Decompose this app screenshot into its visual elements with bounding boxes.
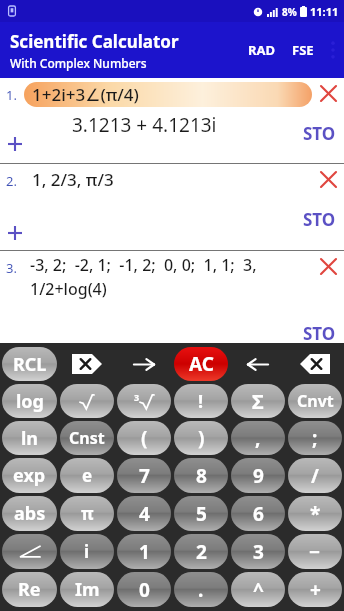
button[interactable]: 7	[117, 458, 171, 493]
button[interactable]: Σ	[231, 384, 285, 418]
staticText: 1.	[6, 86, 17, 104]
staticText: Re	[18, 577, 41, 602]
button[interactable]: e	[60, 458, 114, 493]
button[interactable]: Square root	[60, 384, 114, 418]
button[interactable]: Delete row	[314, 252, 342, 280]
button[interactable]: Cnst	[60, 421, 114, 455]
staticText: -3, 2; -2, 1; -1, 2; 0, 0; 1, 1; 3,	[30, 254, 257, 276]
button[interactable]: Im	[60, 572, 114, 607]
staticText: 0	[139, 577, 150, 603]
staticText: Scientific Calculator	[10, 30, 179, 53]
button[interactable]: 6	[231, 496, 285, 531]
staticText: ln	[21, 426, 39, 451]
staticText: STO	[303, 208, 336, 231]
button[interactable]: log	[2, 384, 57, 418]
button[interactable]: Move left	[231, 347, 285, 381]
button[interactable]: FSE	[284, 31, 322, 69]
staticText: Σ	[252, 388, 264, 415]
staticText: )	[198, 425, 205, 451]
button[interactable]: 3	[231, 534, 285, 569]
button[interactable]: −	[288, 534, 342, 569]
button[interactable]: 1	[117, 534, 171, 569]
staticText: π	[81, 502, 94, 525]
staticText: 1, 2/3, π/3	[32, 168, 114, 191]
button[interactable]: Delete right	[288, 347, 342, 381]
staticText: 3	[134, 391, 140, 403]
button[interactable]: Delete row	[314, 165, 342, 193]
button[interactable]: 1, 2/3, π/3	[24, 167, 312, 192]
staticText: 3.1213 + 4.1213i	[72, 112, 217, 138]
button[interactable]: 0	[117, 572, 171, 607]
button[interactable]: ^	[231, 572, 285, 607]
button[interactable]: ln	[2, 421, 57, 455]
button[interactable]: Cnvt	[288, 384, 342, 418]
button[interactable]: ,	[231, 421, 285, 455]
staticText: 3	[253, 539, 264, 565]
button[interactable]: /	[288, 458, 342, 493]
button[interactable]: -3, 2; -2, 1; -1, 2; 0, 0; 1, 1; 3,	[30, 254, 310, 300]
button[interactable]: exp	[2, 458, 57, 493]
button[interactable]: 4	[117, 496, 171, 531]
button[interactable]: Delete row	[314, 79, 342, 107]
staticText: 8	[196, 463, 207, 489]
staticText: abs	[14, 501, 46, 526]
staticText: 1+2i+3∠(π/4)	[32, 83, 139, 106]
staticText: Cnvt	[297, 390, 334, 412]
staticText: 6	[253, 501, 264, 527]
staticText: .	[198, 577, 204, 603]
button[interactable]: 5	[174, 496, 228, 531]
staticText: +	[310, 577, 321, 603]
button[interactable]: STO	[297, 206, 342, 233]
staticText: STO	[303, 122, 336, 145]
staticText: Im	[75, 577, 100, 602]
button[interactable]: RAD	[240, 31, 284, 69]
button[interactable]: RCL	[2, 347, 57, 381]
button[interactable]: 9	[231, 458, 285, 493]
button[interactable]: )	[174, 421, 228, 455]
button[interactable]: 8	[174, 458, 228, 493]
button[interactable]: Re	[2, 572, 57, 607]
button[interactable]: STO	[297, 120, 342, 147]
button[interactable]: .	[174, 572, 228, 607]
button[interactable]: 2	[174, 534, 228, 569]
button[interactable]: Angle	[2, 534, 57, 569]
staticText: ^	[253, 577, 264, 603]
staticText: With Complex Numbers	[10, 55, 147, 71]
staticText: log	[16, 389, 44, 414]
staticText: AC	[189, 351, 214, 377]
button[interactable]: π	[60, 496, 114, 531]
staticText: 5	[196, 501, 207, 527]
staticText: 11:11	[310, 4, 339, 19]
button[interactable]: Cube root	[117, 384, 171, 418]
button[interactable]: !	[174, 384, 228, 418]
staticText: (	[141, 425, 148, 451]
button[interactable]: abs	[2, 496, 57, 531]
staticText: −	[309, 539, 321, 565]
button[interactable]: Delete left	[60, 347, 114, 381]
staticText: e	[82, 464, 93, 487]
staticText: 1/2+log(4)	[30, 278, 107, 300]
button[interactable]: *	[288, 496, 342, 531]
button[interactable]: 1+2i+3∠(π/4)	[24, 82, 312, 107]
staticText: 9	[253, 463, 264, 489]
staticText: 1	[139, 539, 150, 565]
staticText: exp	[13, 463, 46, 488]
button[interactable]: (	[117, 421, 171, 455]
button[interactable]: ;	[288, 421, 342, 455]
button[interactable]: Add row	[2, 131, 28, 157]
staticText: RCL	[13, 352, 47, 377]
staticText: Cnst	[69, 427, 105, 449]
staticText: /	[311, 463, 319, 489]
button[interactable]: STO	[297, 320, 342, 347]
button[interactable]: Move right	[117, 347, 171, 381]
staticText: ,	[255, 425, 261, 451]
staticText: !	[198, 389, 204, 414]
button[interactable]: +	[288, 572, 342, 607]
staticText: 8%	[282, 5, 297, 19]
button[interactable]: i	[60, 534, 114, 569]
staticText: RAD	[248, 41, 276, 59]
staticText: FSE	[292, 41, 314, 59]
button[interactable]: Add row	[2, 220, 28, 246]
button[interactable]: AC	[174, 347, 228, 381]
